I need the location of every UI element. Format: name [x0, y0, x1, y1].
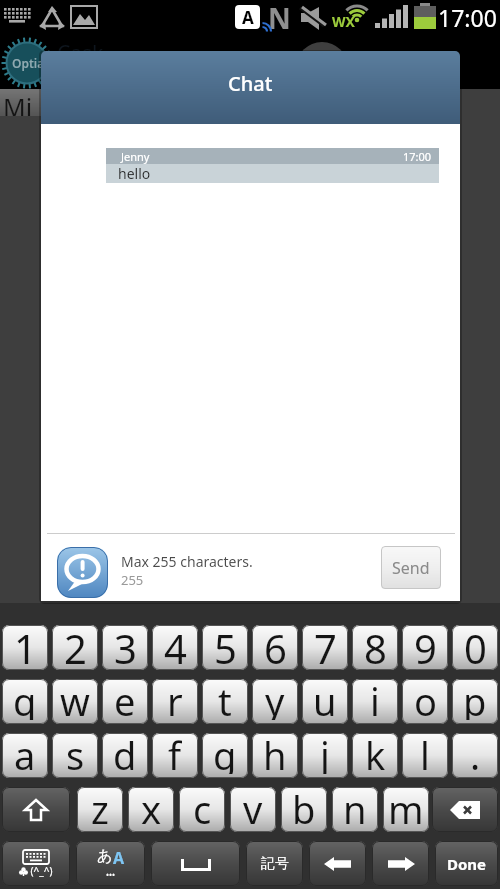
staticText: 2 [64, 625, 87, 666]
staticText: f [168, 733, 182, 774]
button[interactable]: x [128, 787, 174, 832]
staticText: 記号 [261, 855, 289, 873]
button[interactable]: 9 [402, 625, 448, 670]
button[interactable]: z [77, 787, 123, 832]
staticText: e [114, 679, 136, 720]
staticText: n [343, 787, 367, 828]
staticText: u [313, 679, 337, 720]
button[interactable]: w [52, 679, 98, 724]
staticText: 4 [164, 625, 187, 666]
button[interactable]: Send [381, 546, 441, 589]
staticText: y [265, 679, 285, 720]
staticText: Cask [57, 39, 104, 58]
staticText: s [66, 733, 85, 774]
button[interactable]: j [302, 733, 348, 778]
button[interactable]: n [332, 787, 378, 832]
staticText: N [268, 0, 291, 37]
button[interactable] [372, 841, 429, 886]
staticText: b [292, 787, 316, 828]
staticText: A [242, 6, 254, 29]
staticText: Send [392, 557, 430, 579]
staticText: 1 [14, 625, 37, 666]
button[interactable]: k [352, 733, 398, 778]
staticText: 9 [414, 625, 437, 666]
button[interactable]: 7 [302, 625, 348, 670]
button[interactable]: 3 [102, 625, 148, 670]
button[interactable]: . [452, 733, 498, 778]
staticText: r [167, 679, 183, 720]
button[interactable]: 8 [352, 625, 398, 670]
button[interactable]: i [352, 679, 398, 724]
button[interactable]: b [281, 787, 327, 832]
button[interactable]: g [202, 733, 248, 778]
button[interactable]: q [2, 679, 48, 724]
button[interactable]: u [302, 679, 348, 724]
staticText: d [113, 733, 137, 774]
button[interactable]: t [202, 679, 248, 724]
button[interactable]: 5 [202, 625, 248, 670]
staticText: h [263, 733, 287, 774]
staticText: Optia [12, 55, 45, 71]
button[interactable]: c [179, 787, 225, 832]
button[interactable]: y [252, 679, 298, 724]
staticText: t [218, 679, 232, 720]
button[interactable]: r [152, 679, 198, 724]
button[interactable]: o [402, 679, 448, 724]
staticText: v [243, 787, 263, 828]
staticText: Chat [228, 70, 273, 97]
button[interactable]: あ [76, 841, 145, 886]
staticText: (^_^) [28, 864, 53, 878]
staticText: あ [97, 847, 113, 866]
button[interactable]: f [152, 733, 198, 778]
staticText: w [60, 679, 90, 720]
button[interactable]: 6 [252, 625, 298, 670]
button[interactable]: s [52, 733, 98, 778]
staticText: m [388, 787, 424, 828]
button[interactable]: e [102, 679, 148, 724]
staticText: 17:00 [403, 149, 432, 164]
staticText: Jenny [121, 149, 150, 164]
staticText: i [370, 679, 380, 720]
staticText: c [193, 787, 212, 828]
staticText: z [91, 787, 109, 828]
button[interactable] [309, 841, 366, 886]
button[interactable]: d [102, 733, 148, 778]
button[interactable]: l [402, 733, 448, 778]
staticText: ••• [106, 869, 116, 880]
button[interactable]: Done [435, 841, 498, 886]
button[interactable]: p [452, 679, 498, 724]
button[interactable] [2, 787, 70, 832]
staticText: 6 [264, 625, 287, 666]
staticText: j [320, 733, 330, 774]
staticText: hello [118, 164, 151, 183]
button[interactable]: a [2, 733, 48, 778]
button[interactable]: v [230, 787, 276, 832]
staticText: 8 [364, 625, 387, 666]
button[interactable]: 0 [452, 625, 498, 670]
button[interactable]: 1 [2, 625, 48, 670]
staticText: o [414, 679, 437, 720]
staticText: 17:00 [438, 2, 497, 33]
staticText: a [14, 733, 36, 774]
staticText: q [13, 679, 37, 720]
staticText: Max 255 characters. [121, 552, 253, 571]
staticText: 3 [114, 625, 137, 666]
button[interactable]: h [252, 733, 298, 778]
staticText: p [463, 679, 487, 720]
staticText: Mik [3, 90, 42, 116]
button[interactable]: m [383, 787, 429, 832]
staticText: WX [332, 12, 355, 31]
staticText: Done [447, 854, 487, 874]
staticText: x [141, 787, 162, 828]
staticText: g [213, 733, 237, 774]
staticText: . [470, 733, 481, 774]
button[interactable]: (^_^) [2, 841, 70, 886]
staticText: l [420, 733, 430, 774]
button[interactable]: 記号 [246, 841, 303, 886]
button[interactable] [432, 787, 498, 832]
staticText: 7 [314, 625, 337, 666]
staticText: A [113, 847, 125, 869]
button[interactable]: 2 [52, 625, 98, 670]
button[interactable]: 4 [152, 625, 198, 670]
button[interactable] [151, 841, 240, 886]
